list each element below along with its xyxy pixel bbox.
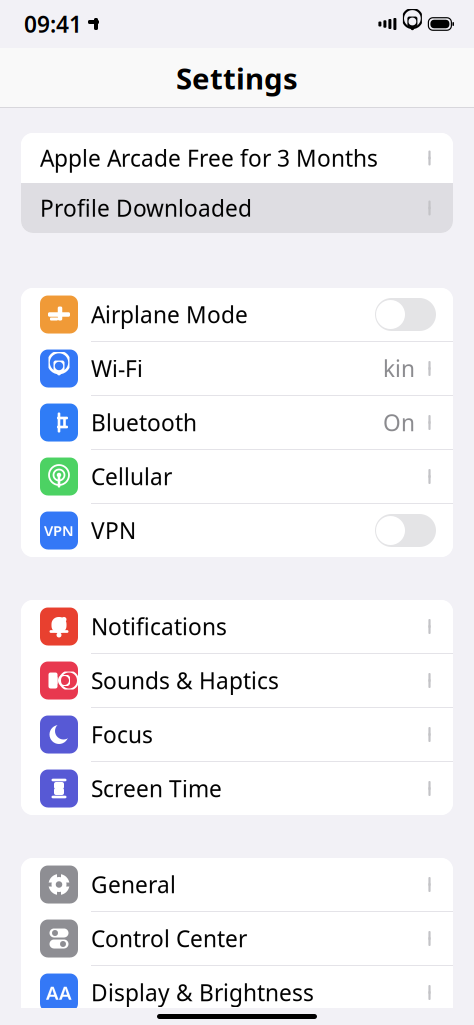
staticText: Bluetooth xyxy=(91,407,197,437)
staticText: Profile Downloaded xyxy=(40,193,252,223)
button[interactable]: Profile Downloaded xyxy=(21,183,453,233)
button[interactable]: Sounds & Haptics xyxy=(21,654,453,707)
button[interactable]: Control Center xyxy=(21,912,453,965)
staticText: Notifications xyxy=(91,611,227,641)
staticText: kin xyxy=(383,353,415,383)
staticText: Control Center xyxy=(91,923,247,953)
button[interactable]: Focus xyxy=(21,708,453,761)
button[interactable]: Apple Arcade Free for 3 Months xyxy=(21,133,453,183)
staticText: Cellular xyxy=(91,461,172,491)
button[interactable]: AA xyxy=(21,966,453,1019)
button[interactable]: General xyxy=(21,858,453,911)
staticText: Display & Brightness xyxy=(91,977,314,1007)
staticText: Settings xyxy=(176,58,298,97)
staticText: VPN xyxy=(91,515,136,545)
button[interactable]: Screen Time xyxy=(21,762,453,815)
button[interactable]: Cellular xyxy=(21,450,453,503)
staticText: Wi-Fi xyxy=(91,353,143,383)
button[interactable]: Notifications xyxy=(21,600,453,653)
button[interactable]: Airplane Mode xyxy=(21,288,453,341)
button[interactable]: VPN xyxy=(21,504,453,557)
button[interactable]: Bluetooth xyxy=(21,396,453,449)
button[interactable]: Wi-Fi xyxy=(21,342,453,395)
staticText: Airplane Mode xyxy=(91,299,248,329)
staticText: On xyxy=(383,407,415,437)
staticText: AA xyxy=(46,980,72,1005)
staticText: 09:41 xyxy=(24,9,82,39)
staticText: Sounds & Haptics xyxy=(91,665,279,695)
staticText: Focus xyxy=(91,719,153,749)
staticText: General xyxy=(91,869,176,899)
staticText: VPN xyxy=(44,521,74,540)
staticText: Apple Arcade Free for 3 Months xyxy=(40,143,378,173)
staticText: Screen Time xyxy=(91,773,222,803)
